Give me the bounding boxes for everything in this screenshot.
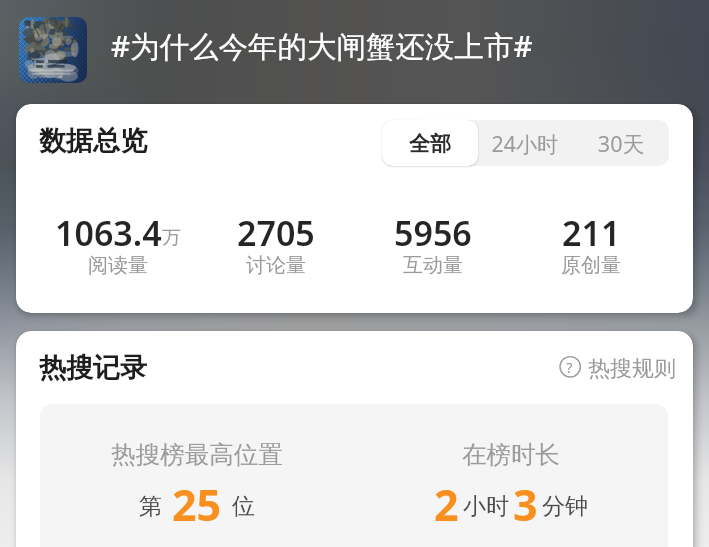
staticText: 25 <box>172 475 222 521</box>
staticText: 位 <box>232 492 255 521</box>
staticText: #为什么今年的大闸蟹还没上市# <box>111 25 533 65</box>
staticText: 原创量 <box>512 253 670 278</box>
staticText: 热搜规则 <box>588 355 676 383</box>
staticText: 分钟 <box>542 492 588 521</box>
staticText: 在榜时长 <box>354 439 668 470</box>
staticText: 阅读量 <box>39 253 197 278</box>
button[interactable]: 热搜规则 <box>552 352 676 382</box>
staticText: 万 <box>162 226 181 250</box>
button[interactable]: 24小时 <box>477 120 573 166</box>
staticText: 211 <box>562 210 621 250</box>
staticText: 24小时 <box>477 129 573 158</box>
staticText: 2705 <box>237 210 315 250</box>
staticText: 互动量 <box>354 253 512 278</box>
staticText: ? <box>566 357 573 377</box>
staticText: 2 <box>434 475 459 521</box>
staticText: 热搜榜最高位置 <box>40 439 354 470</box>
staticText: 全部 <box>382 131 478 157</box>
staticText: 3 <box>513 475 538 521</box>
button[interactable]: Topic cover image <box>19 17 87 83</box>
button[interactable]: 30天 <box>573 120 669 166</box>
staticText: 第 <box>139 492 162 521</box>
staticText: 1063.4 <box>55 210 162 250</box>
staticText: 小时 <box>463 492 509 521</box>
staticText: 讨论量 <box>197 253 355 278</box>
staticText: 5956 <box>394 210 472 250</box>
button[interactable]: 全部 <box>382 120 478 166</box>
staticText: 数据总览 <box>39 124 147 158</box>
staticText: 30天 <box>573 129 669 159</box>
staticText: 热搜记录 <box>39 351 147 385</box>
